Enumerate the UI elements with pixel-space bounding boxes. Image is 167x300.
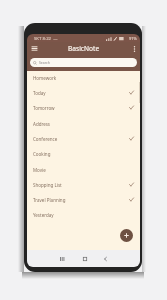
staticText: Movie — [33, 167, 46, 173]
button[interactable]: Tomorrow — [27, 100, 140, 115]
staticText: BasicNote — [68, 44, 100, 53]
staticText: Address — [33, 121, 51, 127]
staticText: Conference — [33, 136, 58, 142]
staticText: 91% — [129, 36, 137, 41]
staticText: Tomorrow — [33, 105, 55, 111]
button[interactable]: Back — [99, 251, 112, 266]
button[interactable]: Search — [30, 58, 137, 67]
button[interactable]: Cooking — [27, 146, 140, 161]
button[interactable]: Shopping List — [27, 177, 140, 192]
staticText: Yesterday — [33, 212, 54, 218]
staticText: Homework — [33, 75, 57, 81]
button[interactable]: Travel Planning — [27, 192, 140, 207]
button[interactable]: Yesterday — [27, 207, 140, 222]
button[interactable]: Today — [27, 85, 140, 100]
button[interactable]: Recents — [56, 251, 69, 266]
staticText: SKT 8:22 — — [34, 35, 58, 41]
button[interactable]: Home — [78, 251, 91, 266]
staticText: Cooking — [33, 151, 51, 157]
button[interactable]: Menu — [27, 42, 41, 54]
button[interactable]: Homework — [27, 70, 140, 85]
button[interactable]: Add note — [120, 229, 133, 242]
button[interactable]: Address — [27, 116, 140, 131]
staticText: Shopping List — [33, 182, 62, 188]
button[interactable]: More options — [128, 42, 140, 54]
staticText: Search — [39, 60, 50, 65]
button[interactable]: Conference — [27, 131, 140, 146]
button[interactable]: Movie — [27, 162, 140, 177]
staticText: Travel Planning — [33, 197, 66, 203]
staticText: Today — [33, 90, 46, 96]
